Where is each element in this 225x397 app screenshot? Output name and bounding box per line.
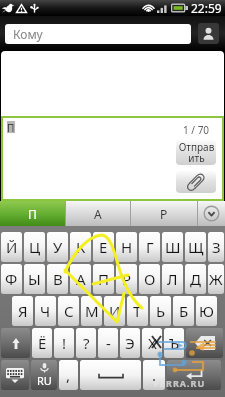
button[interactable]: Э (120, 328, 140, 358)
button[interactable]: Х (142, 328, 162, 358)
staticText: Ш (165, 237, 181, 257)
staticText: Кому (13, 26, 43, 42)
staticText: В (53, 269, 63, 289)
button[interactable]: М (81, 296, 102, 326)
button[interactable]: Е (93, 232, 114, 262)
button[interactable]: В (47, 264, 68, 294)
button[interactable]: Ж (208, 264, 224, 294)
button[interactable]: С (58, 296, 79, 326)
staticText: Х (148, 333, 157, 353)
button[interactable]: Скрыть клавиатуру (1, 360, 29, 390)
staticText: Ю (199, 301, 214, 321)
button[interactable]: О (139, 264, 160, 294)
button[interactable]: Л (162, 264, 183, 294)
staticText: О (144, 269, 156, 289)
button[interactable]: Г (139, 232, 160, 262)
staticText: У (53, 237, 63, 257)
staticText: Б (179, 301, 189, 321)
staticText: Отправить (178, 140, 215, 165)
staticText: Н (121, 237, 133, 257)
staticText: Л (167, 269, 178, 289)
button[interactable]: Б (173, 296, 194, 326)
button[interactable]: Я (12, 296, 33, 326)
button[interactable]: У (47, 232, 68, 262)
button[interactable]: П (93, 264, 114, 294)
staticText: Ц (29, 237, 41, 257)
staticText: ! (62, 333, 67, 353)
staticText: Р (160, 206, 168, 222)
staticText: А (76, 269, 86, 289)
staticText: - (106, 333, 111, 353)
button[interactable]: ? (76, 328, 96, 358)
staticText: Е (99, 237, 108, 257)
button[interactable]: Ь (150, 296, 171, 326)
button[interactable]: К (70, 232, 91, 262)
staticText: , (66, 365, 71, 385)
button[interactable]: И (104, 296, 125, 326)
button[interactable]: З (208, 232, 224, 262)
staticText: 22:59 (191, 0, 222, 16)
staticText: Д (190, 269, 201, 289)
button[interactable]: ! (54, 328, 74, 358)
button[interactable]: Д (185, 264, 206, 294)
button[interactable]: Ввод (167, 360, 221, 390)
staticText: М (85, 301, 99, 321)
button[interactable]: Н (116, 232, 137, 262)
staticText: 1 / 70 (183, 123, 210, 137)
staticText: Г (146, 237, 154, 257)
staticText: Э (125, 333, 135, 353)
button[interactable]: А (65, 201, 130, 226)
staticText: Ж (209, 269, 223, 289)
button[interactable]: А (70, 264, 91, 294)
staticText: Т (133, 301, 142, 321)
button[interactable]: Щ (185, 232, 206, 262)
button[interactable]: Больше вариантов (197, 201, 225, 226)
button[interactable]: Backspace (186, 328, 223, 358)
button[interactable]: Ю (196, 296, 217, 326)
staticText: Ы (28, 269, 41, 289)
staticText: С (64, 301, 74, 321)
button[interactable]: Shift (1, 328, 30, 358)
staticText: ? (83, 333, 90, 353)
staticText: RU (37, 373, 52, 388)
button[interactable]: Ф (1, 264, 22, 294)
staticText: Р (122, 269, 132, 289)
staticText: А (94, 206, 102, 222)
button[interactable]: Р (116, 264, 137, 294)
staticText: Й (6, 237, 18, 257)
staticText: Ч (40, 301, 51, 321)
staticText: Ь (156, 301, 166, 321)
staticText: FERRA.RU (154, 377, 206, 389)
button[interactable]: - (98, 328, 118, 358)
button[interactable]: Ш (162, 232, 183, 262)
button[interactable]: Ъ (164, 328, 184, 358)
staticText: П (7, 121, 15, 133)
button[interactable]: Ц (24, 232, 45, 262)
staticText: Ф (5, 269, 18, 289)
button[interactable]: Ы (24, 264, 45, 294)
staticText: Ъ (169, 333, 180, 353)
staticText: И (109, 301, 121, 321)
button[interactable]: Т (127, 296, 148, 326)
staticText: Я (18, 301, 28, 321)
button[interactable]: Й (1, 232, 22, 262)
button[interactable]: П (0, 201, 65, 226)
button[interactable]: Ч (35, 296, 56, 326)
button[interactable]: Голосовой ввод (31, 360, 57, 390)
staticText: Щ (188, 237, 204, 257)
staticText: . (152, 365, 157, 385)
button[interactable]: Р (130, 201, 197, 226)
staticText: З (212, 237, 221, 257)
button[interactable]: Вложение (176, 171, 216, 193)
button[interactable]: Ё (32, 328, 52, 358)
button[interactable]: . (143, 360, 165, 390)
staticText: К (76, 237, 86, 257)
button[interactable]: Выбрать контакт (198, 23, 219, 44)
button[interactable]: Пробел (80, 360, 141, 390)
staticText: Ё (38, 333, 47, 353)
button[interactable]: Отправить (176, 140, 216, 165)
staticText: П (28, 206, 37, 222)
button[interactable]: , (59, 360, 78, 390)
button[interactable]: Кому (5, 24, 191, 44)
staticText: П (98, 269, 109, 289)
